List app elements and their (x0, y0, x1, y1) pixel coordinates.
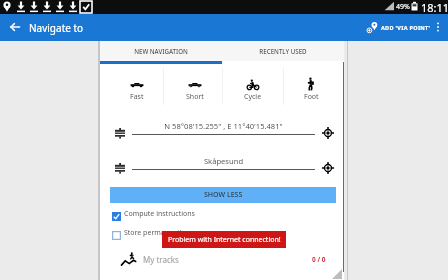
staticText: Problem with Internet connection! (168, 235, 281, 245)
button[interactable]: My tracks (100, 249, 344, 269)
staticText: Cycle (244, 92, 262, 102)
staticText: Short (186, 92, 204, 102)
button[interactable]: RECENTLY USED (222, 41, 344, 61)
staticText: 0 / 0 (312, 255, 326, 264)
staticText: ADD 'VIA POINT' (381, 24, 431, 31)
button[interactable]: Store permanently (100, 227, 344, 242)
staticText: SHOW LESS (204, 190, 243, 200)
staticText: My tracks (143, 254, 179, 265)
button[interactable]: Route options (109, 157, 130, 178)
button[interactable]: Route options (109, 122, 130, 143)
button[interactable]: Fast (109, 66, 165, 106)
staticText: Skåpesund (132, 156, 315, 166)
button[interactable]: Cycle (225, 66, 281, 106)
staticText: 18:11 (421, 0, 448, 14)
staticText: Store permanently (124, 228, 186, 238)
staticText: Compute instructions (124, 209, 195, 219)
staticText: Fast (130, 92, 144, 102)
button[interactable]: ADD 'VIA POINT' (366, 14, 431, 41)
button[interactable]: Back (4, 16, 26, 38)
button[interactable]: Compute instructions (100, 208, 344, 223)
staticText: Navigate to (29, 21, 84, 35)
staticText: Foot (304, 92, 319, 102)
button[interactable]: NEW NAVIGATION (100, 41, 222, 61)
staticText: RECENTLY USED (259, 47, 307, 55)
staticText: NEW NAVIGATION (134, 47, 188, 55)
button[interactable]: Foot (283, 66, 339, 106)
button[interactable]: More options (428, 17, 448, 37)
button[interactable]: Short (167, 66, 223, 106)
button[interactable]: SHOW LESS (110, 187, 336, 203)
staticText: N 58°08'15.255" , E 11°40'15.481" (132, 121, 315, 131)
button[interactable]: Pick on map (317, 122, 339, 144)
staticText: 49% (396, 2, 410, 12)
button[interactable]: Pick on map (317, 157, 339, 179)
